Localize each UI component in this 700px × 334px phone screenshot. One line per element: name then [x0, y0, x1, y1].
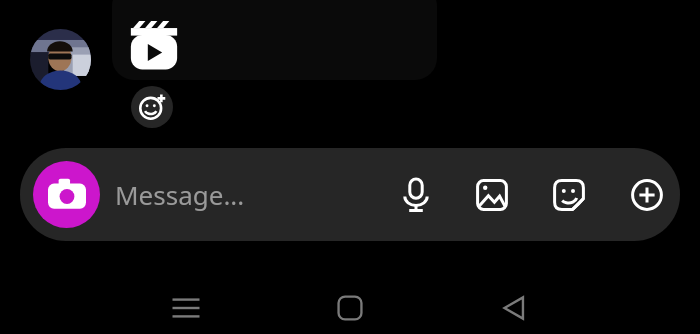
button[interactable]: More	[616, 164, 678, 226]
button[interactable]: Back	[482, 276, 546, 334]
button[interactable]: Home	[318, 276, 382, 334]
button[interactable]: Message...	[115, 161, 365, 228]
button[interactable]: Voice message	[385, 164, 447, 226]
button[interactable]: Camera	[33, 161, 100, 228]
button[interactable]: Stickers	[538, 164, 600, 226]
button[interactable]: Gallery	[461, 164, 523, 226]
staticText: Message...	[115, 177, 245, 212]
button[interactable]: Profile photo	[30, 29, 91, 90]
button[interactable]: Reel	[128, 20, 180, 72]
button[interactable]	[112, 0, 437, 80]
button[interactable]: Recents	[154, 276, 218, 334]
button[interactable]: Add reaction	[131, 86, 173, 128]
